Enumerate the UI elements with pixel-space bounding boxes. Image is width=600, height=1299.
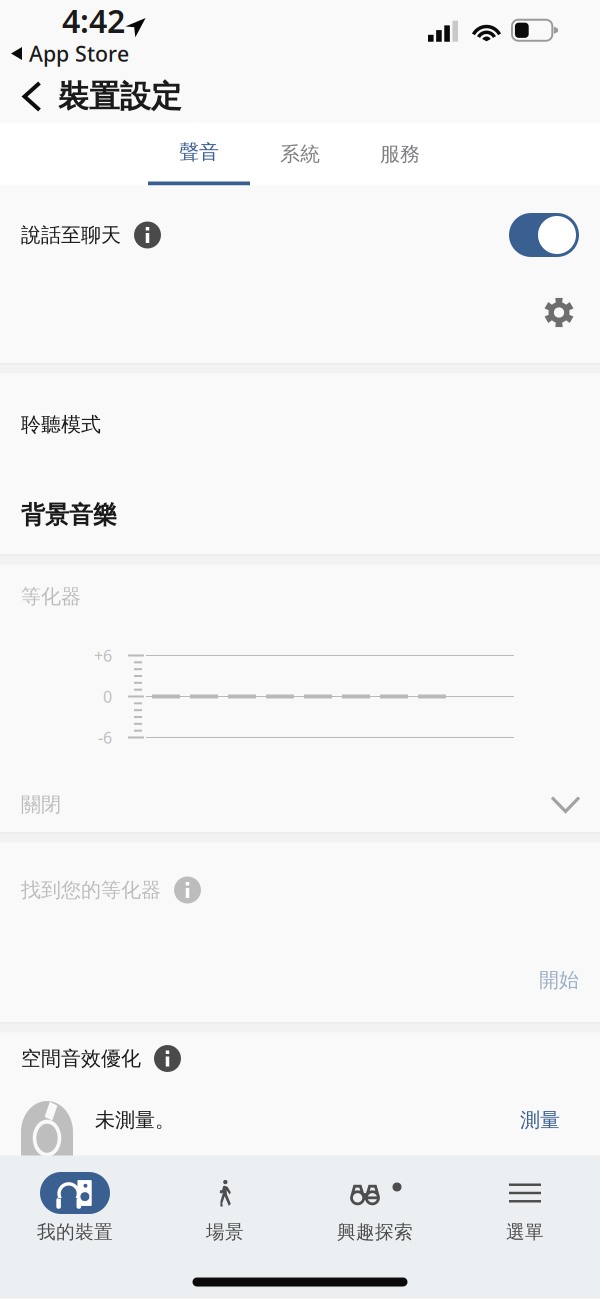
staticText: 聆聽模式: [21, 412, 101, 437]
button[interactable]: 背景音樂: [0, 475, 600, 554]
staticText: -6: [98, 727, 112, 748]
staticText: +6: [94, 645, 112, 666]
staticText: App Store: [29, 39, 129, 68]
button[interactable]: 聲音: [148, 122, 250, 185]
staticText: 選單: [506, 1220, 544, 1243]
staticText: 系統: [280, 142, 320, 166]
staticText: 等化器: [21, 584, 81, 609]
staticText: 空間音效優化: [21, 1046, 141, 1071]
button[interactable]: Speak-to-chat toggle: [509, 213, 579, 257]
staticText: 服務: [380, 142, 420, 166]
staticText: 聲音: [179, 140, 219, 164]
button[interactable]: 興趣探索: [300, 1171, 450, 1241]
staticText: 找到您的等化器: [21, 878, 161, 902]
staticText: 未測量。: [95, 1108, 175, 1132]
staticText: 關閉: [21, 792, 61, 817]
button[interactable]: 場景: [150, 1171, 300, 1241]
staticText: 說話至聊天: [21, 223, 121, 247]
staticText: 裝置設定: [58, 78, 182, 115]
button[interactable]: 測量: [520, 1108, 560, 1132]
staticText: 開始: [539, 968, 579, 992]
button[interactable]: 選單: [450, 1171, 600, 1241]
button[interactable]: 聆聽模式: [0, 373, 600, 475]
button[interactable]: Settings: [531, 284, 587, 340]
staticText: 我的裝置: [37, 1220, 113, 1243]
button[interactable]: 我的裝置: [0, 1171, 150, 1241]
button[interactable]: More info: [134, 221, 161, 248]
button[interactable]: 服務: [350, 124, 450, 183]
staticText: 0: [103, 686, 112, 707]
button[interactable]: Back: [6, 70, 58, 122]
staticText: 興趣探索: [337, 1220, 413, 1243]
button[interactable]: 開始: [0, 937, 600, 1022]
button[interactable]: 系統: [250, 124, 350, 183]
staticText: 4:42: [62, 0, 125, 42]
staticText: 背景音樂: [21, 500, 117, 530]
staticText: 測量: [520, 1108, 560, 1132]
button[interactable]: More info: [154, 1045, 181, 1072]
staticText: 場景: [206, 1220, 244, 1243]
button[interactable]: 關閉: [0, 776, 600, 832]
button[interactable]: More info: [174, 876, 201, 903]
